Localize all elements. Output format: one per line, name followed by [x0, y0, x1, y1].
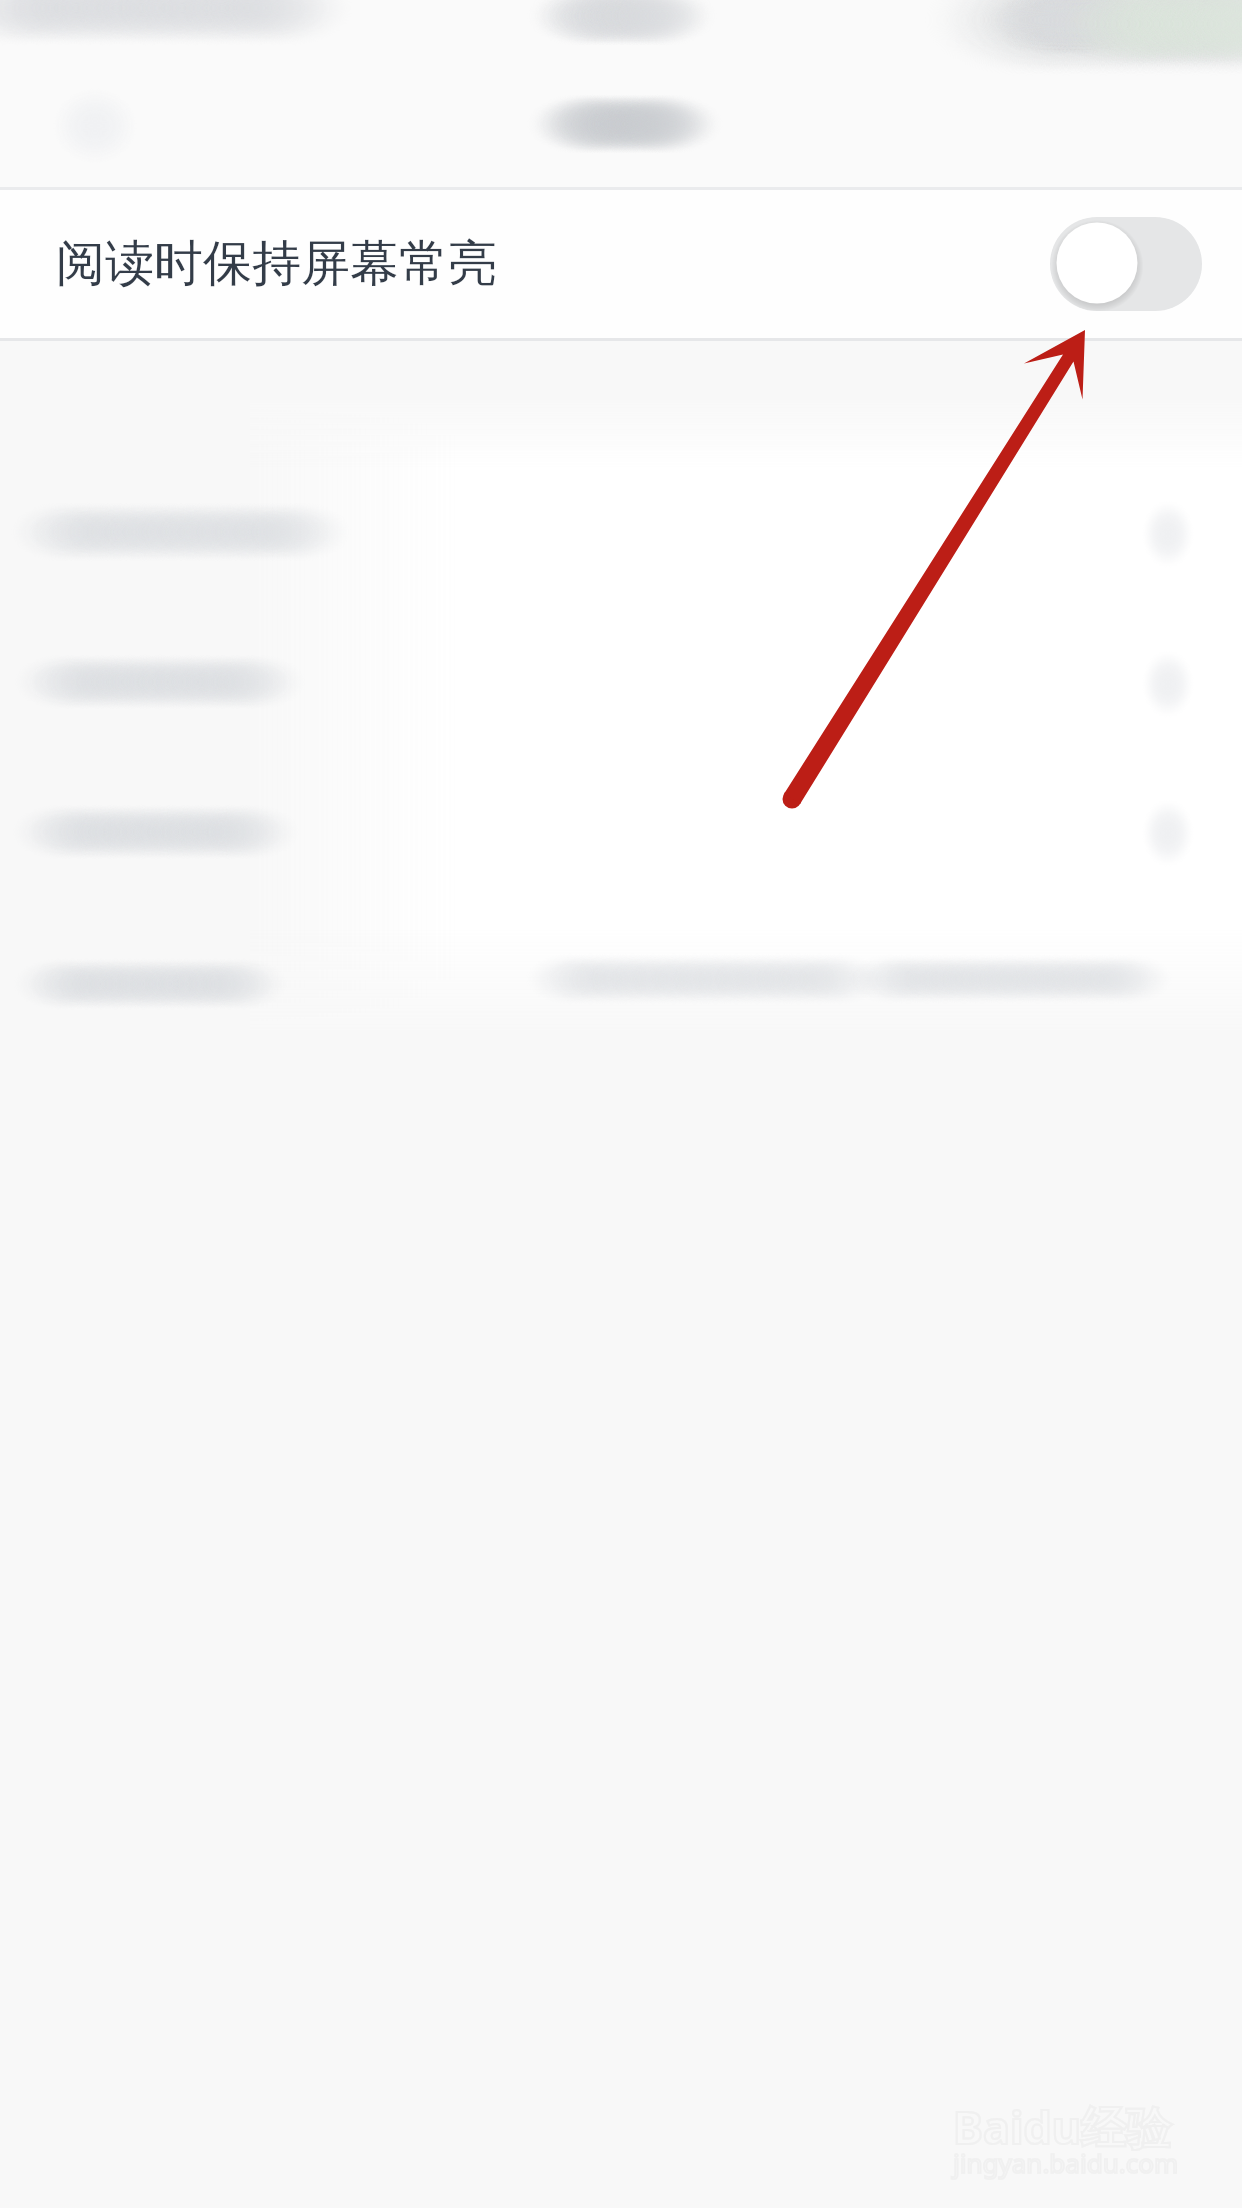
- staticText: Baidu经验: [953, 2096, 1172, 2157]
- button[interactable]: Keep screen on while reading toggle: [1050, 217, 1202, 311]
- staticText: jingyan.baidu.com: [953, 2145, 1179, 2180]
- staticText: 阅读时保持屏幕常亮: [56, 233, 497, 295]
- button[interactable]: 阅读时保持屏幕常亮: [0, 190, 1242, 338]
